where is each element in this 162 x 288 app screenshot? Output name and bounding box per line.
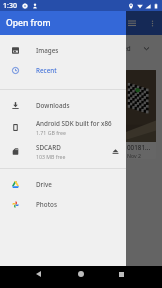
staticText: Sort by Modified [82, 44, 131, 53]
staticText: Open from [6, 17, 51, 29]
staticText: 00181... [127, 143, 151, 152]
button[interactable]: Photos [0, 194, 126, 214]
button[interactable]: 00181... [126, 70, 156, 159]
button[interactable]: SDCARD [0, 140, 126, 162]
button[interactable]: Recents [113, 266, 129, 282]
button[interactable]: Home [73, 266, 89, 282]
button[interactable]: List view [125, 16, 139, 30]
button[interactable]: Drive [0, 174, 126, 194]
button[interactable]: Downloads [0, 95, 126, 115]
staticText: Drive [36, 180, 52, 189]
staticText: Nov 2 [127, 152, 141, 159]
staticText: Photos [36, 200, 57, 209]
button[interactable]: 00181... [92, 70, 122, 159]
staticText: Images [36, 46, 59, 55]
staticText: 103 MB free [36, 153, 66, 160]
staticText: SDCARD [36, 143, 61, 152]
button[interactable]: Images [0, 40, 126, 60]
staticText: 1.71 GB free [36, 129, 66, 136]
staticText: Downloads [36, 101, 70, 110]
staticText: 00181... [93, 143, 117, 152]
button[interactable]: Android SDK built for x86 [0, 116, 126, 138]
staticText: Recent [36, 66, 57, 75]
staticText: Android SDK built for x86 [36, 119, 112, 128]
button[interactable]: Sort by Modified [0, 41, 162, 56]
button[interactable]: More options [146, 17, 158, 29]
button[interactable]: Recent [0, 60, 126, 80]
staticText: 1:30 [3, 1, 17, 11]
button[interactable]: Back [30, 266, 46, 282]
button[interactable]: Eject [108, 144, 122, 158]
